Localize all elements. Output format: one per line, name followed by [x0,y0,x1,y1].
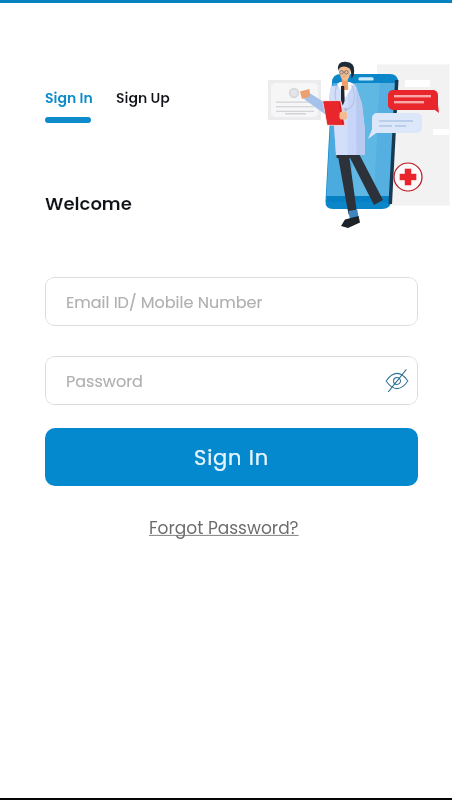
button[interactable]: Show password [382,366,412,396]
staticText: Forgot Password? [149,516,299,540]
staticText: Password [66,370,143,392]
button[interactable]: Sign Up [116,88,170,108]
button[interactable]: Email ID/ Mobile Number [45,277,418,326]
button[interactable]: Password [45,356,418,405]
button[interactable]: Sign In [45,88,93,108]
staticText: Welcome [45,191,132,216]
button[interactable]: Sign In [45,428,418,486]
staticText: Sign In [45,88,93,108]
button[interactable]: Forgot Password? [149,516,299,540]
staticText: Sign Up [116,88,170,108]
staticText: Sign In [194,443,269,472]
staticText: Email ID/ Mobile Number [66,291,263,313]
